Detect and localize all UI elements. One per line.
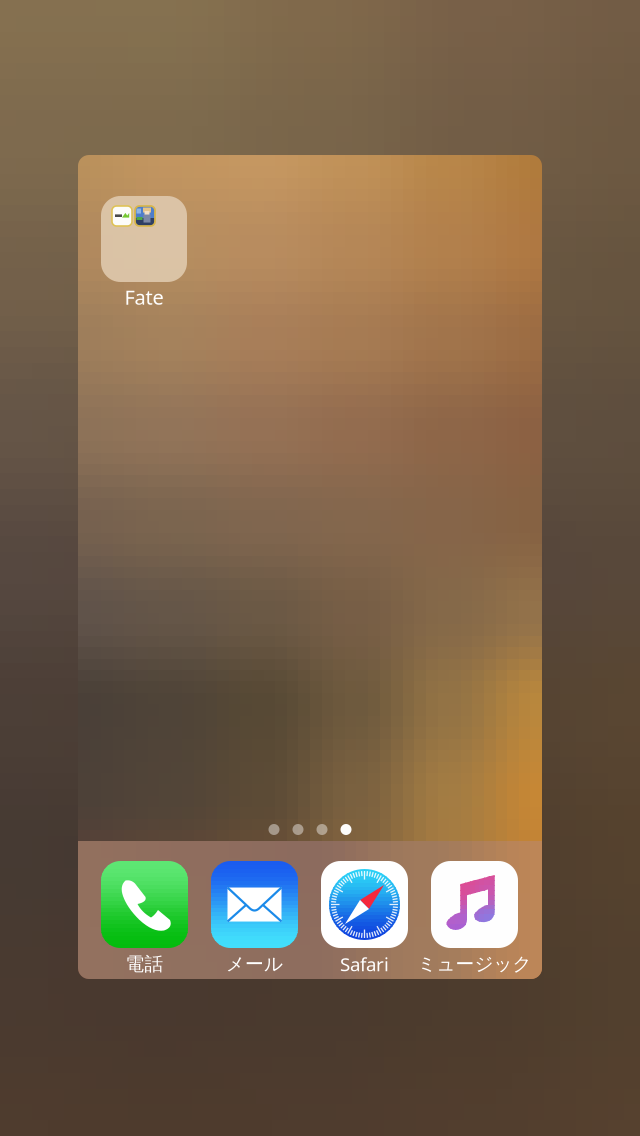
button[interactable]: 電話: [101, 861, 188, 974]
button[interactable]: ミュージック: [431, 861, 518, 974]
staticText: Fate: [124, 284, 163, 310]
button[interactable]: メール: [211, 861, 298, 974]
staticText: 電話: [125, 952, 163, 975]
staticText: Safari: [340, 952, 389, 976]
button[interactable]: Fate: [89, 196, 199, 309]
staticText: ミュージック: [417, 952, 531, 975]
staticText: メール: [226, 952, 283, 975]
button[interactable]: Safari: [321, 861, 408, 974]
